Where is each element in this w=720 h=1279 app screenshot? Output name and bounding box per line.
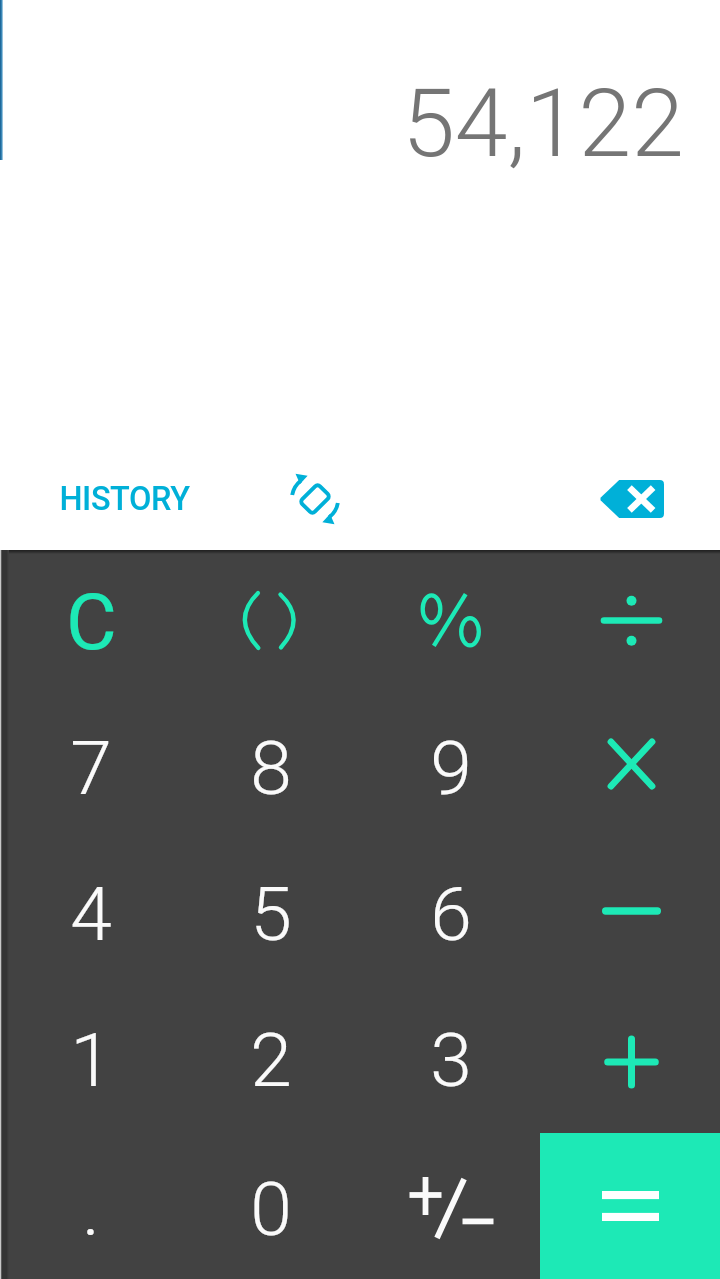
button[interactable]: Multiply [540, 695, 720, 841]
staticText: 7 [70, 724, 112, 812]
button[interactable]: 2 [180, 987, 360, 1133]
button[interactable]: 7 [0, 695, 180, 841]
button[interactable]: Equals [540, 1133, 720, 1279]
button[interactable]: Percent [360, 550, 540, 695]
staticText: C [66, 577, 117, 668]
button[interactable]: 8 [180, 695, 360, 841]
button[interactable]: . [0, 1133, 180, 1279]
staticText: . [82, 1165, 100, 1253]
button[interactable]: 6 [360, 841, 540, 987]
staticText: 5 [250, 870, 292, 958]
staticText: 8 [250, 724, 292, 812]
button[interactable]: HISTORY [41, 464, 208, 534]
button[interactable]: 0 [180, 1133, 360, 1279]
button[interactable]: 9 [360, 695, 540, 841]
button[interactable]: Plus [540, 987, 720, 1133]
staticText: 4 [70, 870, 112, 958]
button[interactable]: Divide [540, 550, 720, 695]
button[interactable]: 1 [0, 987, 180, 1133]
button[interactable]: Minus [540, 841, 720, 987]
button[interactable]: C [0, 550, 180, 695]
button[interactable]: 3 [360, 987, 540, 1133]
staticText: 0 [250, 1165, 292, 1253]
staticText: 6 [430, 870, 472, 958]
staticText: 54,122 [402, 68, 684, 179]
staticText: 2 [250, 1016, 292, 1104]
staticText: 9 [430, 724, 472, 812]
button[interactable]: Rotate screen [275, 459, 355, 539]
staticText: 1 [70, 1016, 112, 1104]
button[interactable]: 4 [0, 841, 180, 987]
button[interactable]: 5 [180, 841, 360, 987]
button[interactable]: Plus minus [360, 1133, 540, 1279]
staticText: 3 [430, 1016, 472, 1104]
staticText: HISTORY [59, 480, 190, 518]
button[interactable]: Parentheses [180, 550, 360, 695]
button[interactable]: Backspace [586, 466, 678, 532]
